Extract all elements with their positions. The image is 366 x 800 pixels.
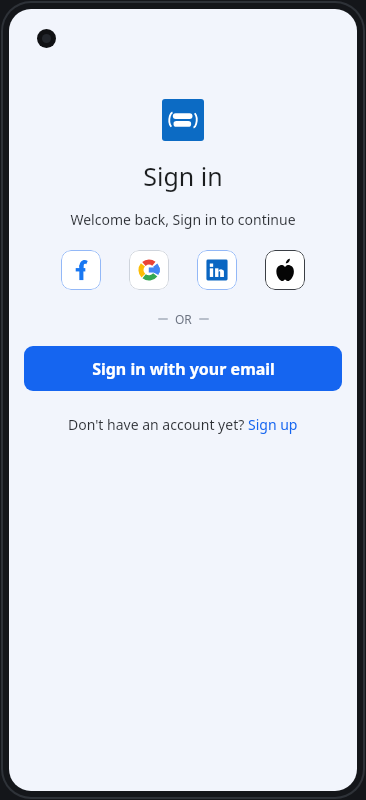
button[interactable]: Don't have an account yet? [62, 413, 304, 436]
staticText: Sign in with your email [92, 358, 275, 380]
staticText: Don't have an account yet? [68, 415, 248, 434]
button[interactable]: Sign in with Google [129, 250, 169, 290]
button[interactable]: Sign in with Facebook [61, 250, 101, 290]
staticText: OR [175, 311, 192, 327]
button[interactable]: Sign in with LinkedIn [197, 250, 237, 290]
staticText: Sign up [248, 415, 298, 434]
staticText: Welcome back, Sign in to continue [70, 210, 296, 229]
button[interactable]: Sign in with your email [24, 346, 342, 391]
button[interactable]: Sign in with Apple [265, 250, 305, 290]
staticText: Sign in [143, 159, 223, 193]
